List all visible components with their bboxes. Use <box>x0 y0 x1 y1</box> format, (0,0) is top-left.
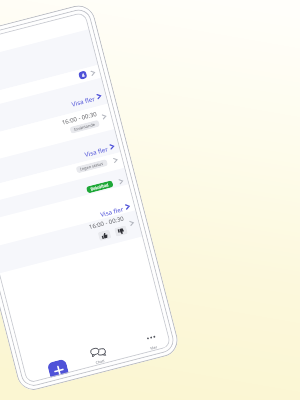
button[interactable]: 4 <box>0 65 102 114</box>
button[interactable]: Ingen status <box>0 154 124 200</box>
staticText: 16:00 - 00:30 <box>61 110 98 127</box>
staticText: 4 <box>81 72 85 78</box>
button[interactable]: Visa fler <box>0 200 136 246</box>
button[interactable]: Mer <box>133 329 170 354</box>
staticText: Visa fler <box>84 144 109 158</box>
staticText: Ingen status <box>80 161 104 172</box>
staticText: 16:00 - 00:30 <box>88 214 125 231</box>
staticText: Visa fler <box>99 204 124 218</box>
button[interactable]: Bekräftad <box>0 175 129 221</box>
button[interactable]: Tumme ner <box>114 225 128 237</box>
button[interactable]: 16:00 - 00:30 <box>0 106 114 160</box>
button[interactable]: Tumme upp <box>98 229 111 241</box>
staticText: Inväntande <box>73 122 96 132</box>
button[interactable]: Visa fler <box>0 90 107 136</box>
staticText: Mer <box>150 344 158 351</box>
button[interactable]: Chatt <box>80 343 117 368</box>
staticText: Chatt <box>94 358 105 365</box>
staticText: Bekräftad <box>90 182 110 192</box>
button[interactable]: Visa fler <box>0 140 120 186</box>
button[interactable]: 16:00 - 00:30 <box>0 211 141 268</box>
button[interactable]: Lägg till <box>47 359 69 378</box>
staticText: Visa fler <box>71 94 96 108</box>
